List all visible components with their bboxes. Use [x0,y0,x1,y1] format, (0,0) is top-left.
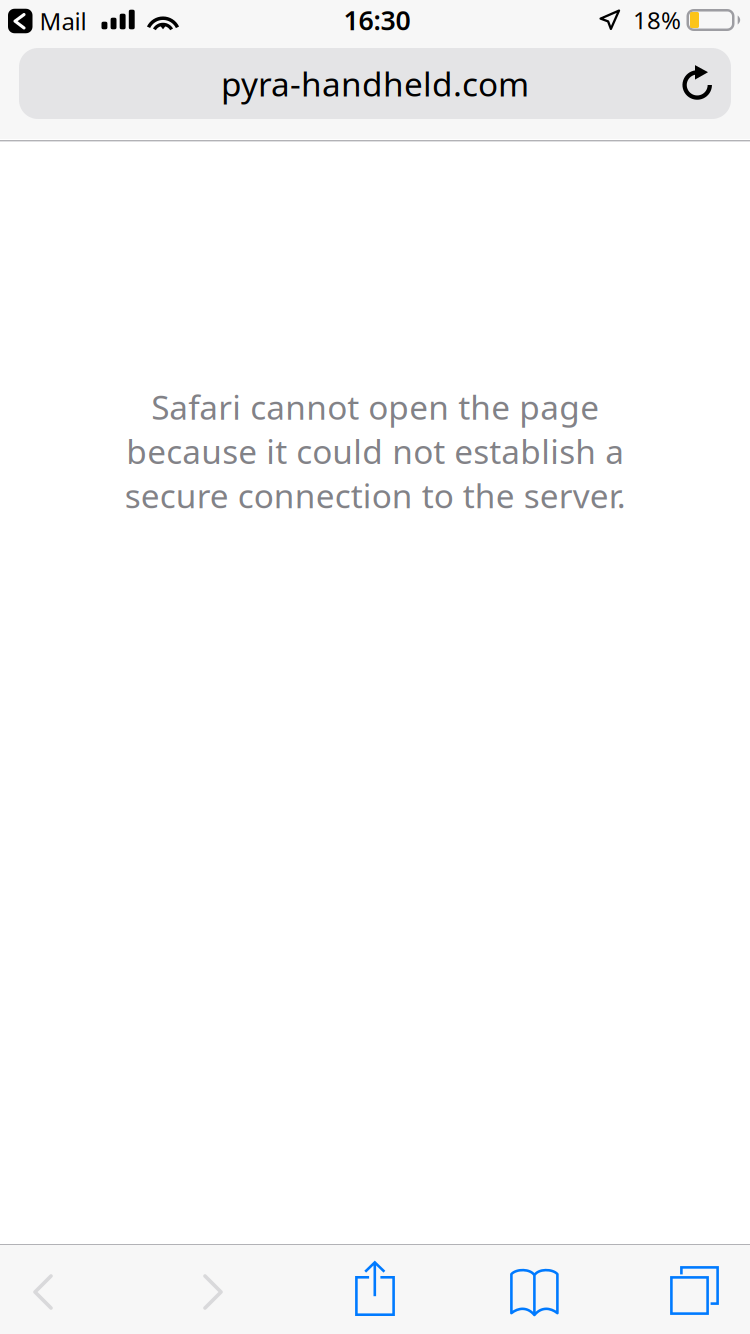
staticText: 16:30 [343,2,410,38]
staticText: Mail [39,5,86,37]
button[interactable]: Mail [8,4,86,38]
staticText: Safari cannot open the page because it c… [124,385,625,517]
button[interactable]: Bookmarks [444,1245,604,1334]
staticText: 18% [633,4,681,36]
button[interactable]: Forward [122,1245,284,1334]
button[interactable]: Share [284,1245,444,1334]
button[interactable]: Back [0,1245,122,1334]
button[interactable]: pyra-handheld.com [19,48,731,119]
staticText: pyra-handheld.com [221,61,529,106]
button[interactable]: Tabs [604,1245,750,1334]
